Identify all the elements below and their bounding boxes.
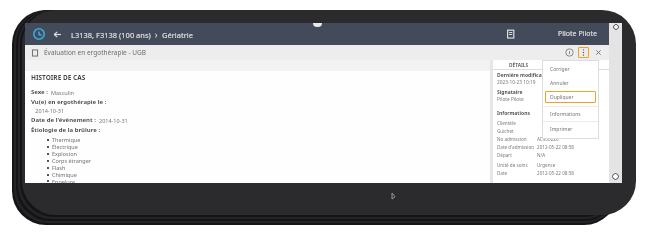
staticText: 2014-10-31 bbox=[99, 117, 128, 124]
staticText: Guichet bbox=[497, 128, 537, 134]
staticText: N/A bbox=[537, 152, 546, 158]
staticText: Masculin bbox=[51, 89, 74, 96]
button[interactable]: Information bbox=[565, 48, 574, 57]
staticText: Étiologie de la brûlure : bbox=[31, 126, 101, 134]
staticText: Évaluation en ergothérapie - UGB bbox=[44, 48, 146, 57]
staticText: Signataire bbox=[497, 89, 523, 96]
staticText: Chimique bbox=[52, 171, 77, 178]
staticText: Corriger bbox=[550, 66, 570, 73]
button[interactable]: Informations nominales bbox=[542, 107, 599, 121]
staticText: 2012-05-22 08:58 bbox=[537, 170, 574, 176]
staticText: Date bbox=[497, 170, 537, 176]
staticText: Corps étranger bbox=[52, 157, 92, 164]
staticText: L3138, F3138 (100 ans) bbox=[71, 30, 151, 40]
button[interactable]: Imprimer bbox=[542, 122, 599, 136]
staticText: AC930220 bbox=[537, 136, 559, 142]
button[interactable]: Documents bbox=[506, 29, 516, 39]
staticText: HISTOIRE DE CAS bbox=[31, 73, 86, 82]
button[interactable]: Annuler bbox=[542, 76, 599, 90]
button[interactable]: Close bbox=[594, 48, 603, 57]
staticText: Flash bbox=[52, 164, 66, 171]
staticText: Thermique bbox=[52, 136, 81, 143]
staticText: Informations nominales bbox=[550, 111, 599, 118]
staticText: Pilote Pilote bbox=[497, 96, 524, 103]
button[interactable]: L3138, F3138 (100 ans) bbox=[71, 29, 193, 40]
staticText: Date de l'évènement : bbox=[31, 116, 96, 124]
staticText: Engelure bbox=[52, 178, 76, 183]
button[interactable]: Dupliquer bbox=[545, 91, 596, 103]
button[interactable]: Back bbox=[52, 29, 63, 40]
staticText: Gériatrie bbox=[162, 30, 193, 40]
button[interactable]: App logo bbox=[33, 28, 45, 40]
staticText: 2023-10-23 10:19 bbox=[497, 79, 536, 86]
staticText: Électrique bbox=[52, 143, 78, 150]
staticText: Dernière modification bbox=[497, 72, 552, 79]
staticText: Vu(e) en ergothérapie le : bbox=[31, 98, 107, 106]
staticText: Imprimer bbox=[550, 126, 573, 133]
staticText: Date d'admission bbox=[497, 144, 537, 150]
staticText: DÉTAILS bbox=[509, 62, 529, 69]
staticText: Informations bbox=[497, 110, 530, 117]
button[interactable]: DÉTAILS bbox=[509, 62, 529, 69]
staticText: Urgence bbox=[537, 162, 556, 168]
staticText: Pilote Pilote bbox=[558, 29, 597, 39]
staticText: 2012-05-22 08:58 bbox=[537, 144, 574, 150]
staticText: 2014-10-31 bbox=[31, 107, 65, 114]
button[interactable]: Pilote Pilote bbox=[558, 29, 597, 39]
staticText: › bbox=[155, 29, 158, 40]
button[interactable]: More options bbox=[578, 47, 589, 58]
button[interactable]: Corriger bbox=[542, 62, 599, 76]
staticText: Clientèle bbox=[497, 120, 537, 126]
staticText: Annuler bbox=[550, 80, 569, 87]
button[interactable]: Form bbox=[31, 49, 39, 57]
staticText: Dupliquer bbox=[550, 94, 574, 101]
staticText: No admission bbox=[497, 136, 537, 142]
staticText: Explosion bbox=[52, 150, 77, 157]
staticText: Unité de soins bbox=[497, 162, 537, 168]
staticText: Départ bbox=[497, 152, 537, 158]
staticText: Sexe : bbox=[31, 88, 48, 96]
